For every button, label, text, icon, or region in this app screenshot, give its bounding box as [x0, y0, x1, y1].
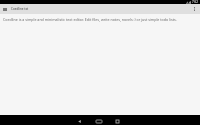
- button[interactable]: Recents: [111, 119, 124, 124]
- button[interactable]: Menu: [2, 4, 8, 14]
- button[interactable]: More options: [190, 4, 198, 14]
- staticText: Coedline txt: [11, 7, 29, 11]
- button[interactable]: Home: [92, 119, 105, 124]
- button[interactable]: Back: [73, 119, 86, 124]
- staticText: Coedline is a simple and minimalistic te…: [3, 17, 177, 22]
- staticText: 7:52: [192, 0, 198, 4]
